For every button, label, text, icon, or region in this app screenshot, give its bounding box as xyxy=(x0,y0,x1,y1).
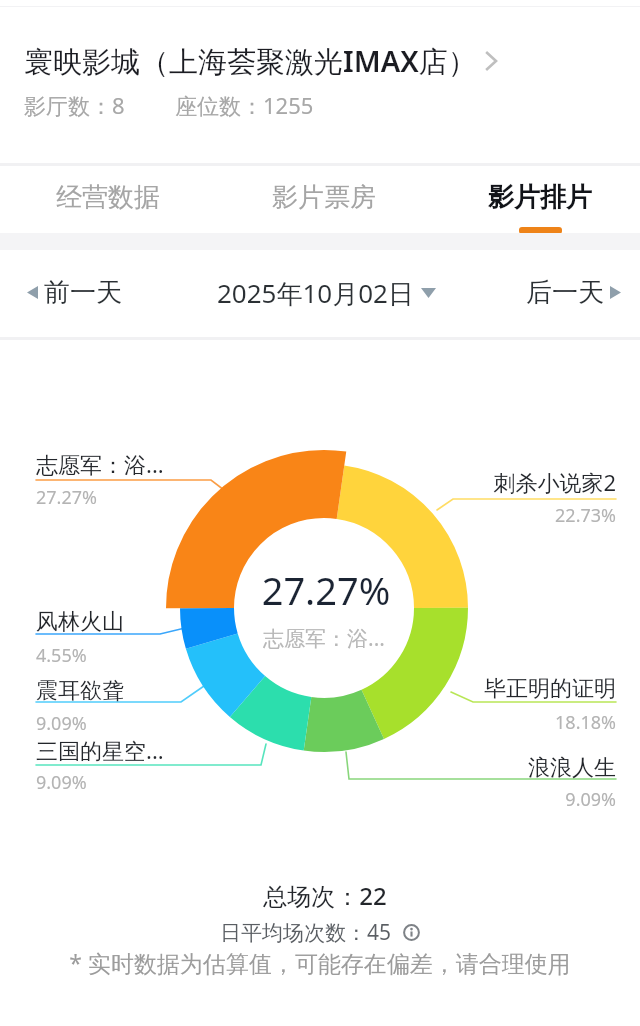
button[interactable]: 寰映影城（上海荟聚激光IMAX店） xyxy=(0,33,640,89)
staticText: 总场次：22 xyxy=(5,879,640,912)
staticText: 三国的星空... xyxy=(36,735,164,765)
staticText: 刺杀小说家2 xyxy=(0,467,616,497)
other: Info xyxy=(403,924,420,941)
button[interactable]: 刺杀小说家2 xyxy=(0,467,616,497)
button[interactable]: 影片票房 xyxy=(254,166,394,234)
staticText: 2025年10月02日 xyxy=(217,275,414,311)
staticText: 座位数：1255 xyxy=(175,90,314,120)
staticText: 浪浪人生 xyxy=(0,754,616,782)
staticText: 前一天 xyxy=(44,276,122,309)
staticText: 18.18% xyxy=(0,710,616,735)
staticText: 影片票房 xyxy=(272,181,376,214)
button[interactable]: 震耳欲聋 xyxy=(36,677,124,705)
staticText: 4.55% xyxy=(36,643,87,668)
staticText: * 实时数据为估算值，可能存在偏差，请合理使用 xyxy=(0,947,640,978)
staticText: 9.09% xyxy=(36,711,87,736)
staticText: 风林火山 xyxy=(36,608,124,636)
staticText: 影片排片 xyxy=(488,181,592,214)
staticText: 27.27% xyxy=(6,564,640,616)
staticText: 志愿军：浴... xyxy=(4,624,640,653)
button[interactable]: 经营数据 xyxy=(38,166,178,234)
staticText: 经营数据 xyxy=(56,181,160,214)
button[interactable]: 毕正明的证明 xyxy=(0,675,616,703)
staticText: 日平均场次数：45 xyxy=(220,918,392,947)
staticText: 震耳欲聋 xyxy=(36,677,124,705)
staticText: 9.09% xyxy=(36,770,87,795)
staticText: 9.09% xyxy=(0,787,616,812)
button[interactable]: 浪浪人生 xyxy=(0,754,616,782)
staticText: 22.73% xyxy=(0,503,616,528)
staticText: 志愿军：浴... xyxy=(36,449,164,479)
staticText: 后一天 xyxy=(526,276,604,309)
staticText: 27.27% xyxy=(36,485,97,510)
button[interactable]: 影片排片 xyxy=(470,166,610,234)
staticText: 寰映影城（上海荟聚激光IMAX店） xyxy=(24,41,477,81)
button[interactable]: 三国的星空... xyxy=(36,735,164,765)
button[interactable]: 志愿军：浴... xyxy=(36,449,164,479)
button[interactable]: 2025年10月02日 xyxy=(202,249,450,336)
staticText: 影厅数：8 xyxy=(24,90,125,120)
staticText: 毕正明的证明 xyxy=(0,675,616,703)
button[interactable]: 风林火山 xyxy=(36,608,124,636)
button[interactable]: 前一天 xyxy=(0,249,170,336)
button[interactable]: 后一天 xyxy=(470,249,640,336)
